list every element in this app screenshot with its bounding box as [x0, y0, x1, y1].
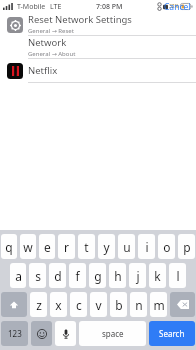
button[interactable]: i — [138, 234, 155, 259]
button[interactable]: a — [10, 263, 26, 288]
staticText: a — [15, 268, 22, 284]
button[interactable]: u — [118, 234, 135, 259]
button[interactable]: m — [150, 292, 167, 317]
button[interactable]: d — [49, 263, 66, 288]
button[interactable]: r — [58, 234, 75, 259]
button[interactable]: q — [1, 234, 17, 259]
staticText: Search — [159, 328, 185, 339]
staticText: k — [154, 268, 161, 284]
button[interactable]: Emoji keyboard — [31, 321, 52, 346]
button[interactable]: y — [98, 234, 115, 259]
button[interactable]: x — [50, 292, 67, 317]
button[interactable]: e — [39, 234, 55, 259]
staticText: f — [75, 268, 80, 284]
button[interactable]: n — [130, 292, 147, 317]
button[interactable]: p — [178, 234, 195, 259]
button[interactable]: v — [90, 292, 107, 317]
staticText: c — [76, 297, 82, 313]
staticText: Cancel — [164, 1, 191, 13]
staticText: i — [145, 239, 149, 255]
button[interactable]: k — [149, 263, 166, 288]
staticText: z — [36, 297, 42, 313]
staticText: e — [44, 239, 51, 255]
button[interactable]: c — [70, 292, 87, 317]
staticText: o — [163, 239, 171, 255]
staticText: x — [55, 297, 62, 313]
button[interactable]: f — [69, 263, 86, 288]
button[interactable]: j — [129, 263, 146, 288]
staticText: T-Mobile — [17, 2, 46, 12]
staticText: r — [64, 239, 69, 255]
button[interactable]: t — [78, 234, 95, 259]
staticText: m — [153, 297, 165, 313]
button[interactable]: Network — [0, 36, 196, 58]
button[interactable]: Reset Network Settings — [0, 13, 196, 35]
staticText: g — [94, 268, 102, 284]
staticText: n — [135, 297, 143, 313]
button[interactable]: Backspace — [170, 292, 195, 317]
staticText: General → Reset — [28, 27, 74, 35]
staticText: Network — [28, 36, 67, 49]
button[interactable]: z — [30, 292, 47, 317]
button[interactable]: 123 — [1, 321, 28, 346]
button[interactable]: Netflix — [0, 59, 196, 82]
button[interactable]: g — [89, 263, 106, 288]
staticText: LTE — [50, 2, 62, 12]
button[interactable]: s — [29, 263, 46, 288]
staticText: p — [183, 239, 191, 255]
staticText: s — [35, 268, 41, 284]
staticText: v — [95, 297, 102, 313]
staticText: u — [123, 239, 131, 255]
staticText: d — [54, 268, 62, 284]
button[interactable]: Search — [149, 321, 195, 346]
button[interactable]: w — [20, 234, 36, 259]
button[interactable]: l — [169, 263, 186, 288]
button[interactable]: h — [109, 263, 126, 288]
staticText: j — [136, 268, 140, 284]
staticText: 32% — [169, 3, 179, 10]
staticText: Netflix — [28, 64, 58, 77]
staticText: Reset Network Settings — [28, 13, 132, 26]
button[interactable]: Dictation — [55, 321, 76, 346]
staticText: 123 — [8, 328, 22, 339]
staticText: w — [23, 239, 33, 255]
button[interactable]: space — [79, 321, 146, 346]
button[interactable]: b — [110, 292, 127, 317]
staticText: General → About — [28, 50, 76, 58]
staticText: t — [84, 239, 89, 255]
staticText: q — [5, 239, 13, 255]
staticText: b — [115, 297, 123, 313]
staticText: h — [114, 268, 122, 284]
button[interactable]: Shift — [1, 292, 27, 317]
staticText: y — [103, 239, 110, 255]
staticText: 7:08 PM — [96, 2, 123, 12]
staticText: l — [176, 268, 180, 284]
staticText: space — [102, 328, 124, 339]
button[interactable]: o — [158, 234, 175, 259]
